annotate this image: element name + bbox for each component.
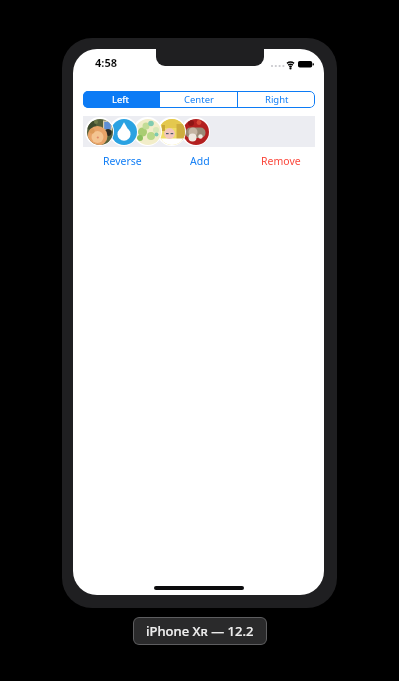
button[interactable]: Right [238, 91, 315, 108]
button[interactable]: Add [161, 152, 238, 169]
staticText: Left [112, 93, 130, 106]
button[interactable]: Remove [238, 152, 315, 169]
button[interactable]: Reverse [83, 152, 161, 169]
staticText: iPhone Xʀ — 12.2 [146, 622, 254, 640]
staticText: Remove [261, 154, 301, 168]
button[interactable]: Center [160, 91, 237, 108]
staticText: 4:58 [95, 55, 117, 70]
staticText: Reverse [103, 154, 142, 168]
button[interactable]: Left [83, 91, 159, 108]
staticText: Center [184, 93, 214, 106]
staticText: Add [190, 154, 210, 168]
staticText: Right [265, 93, 289, 106]
